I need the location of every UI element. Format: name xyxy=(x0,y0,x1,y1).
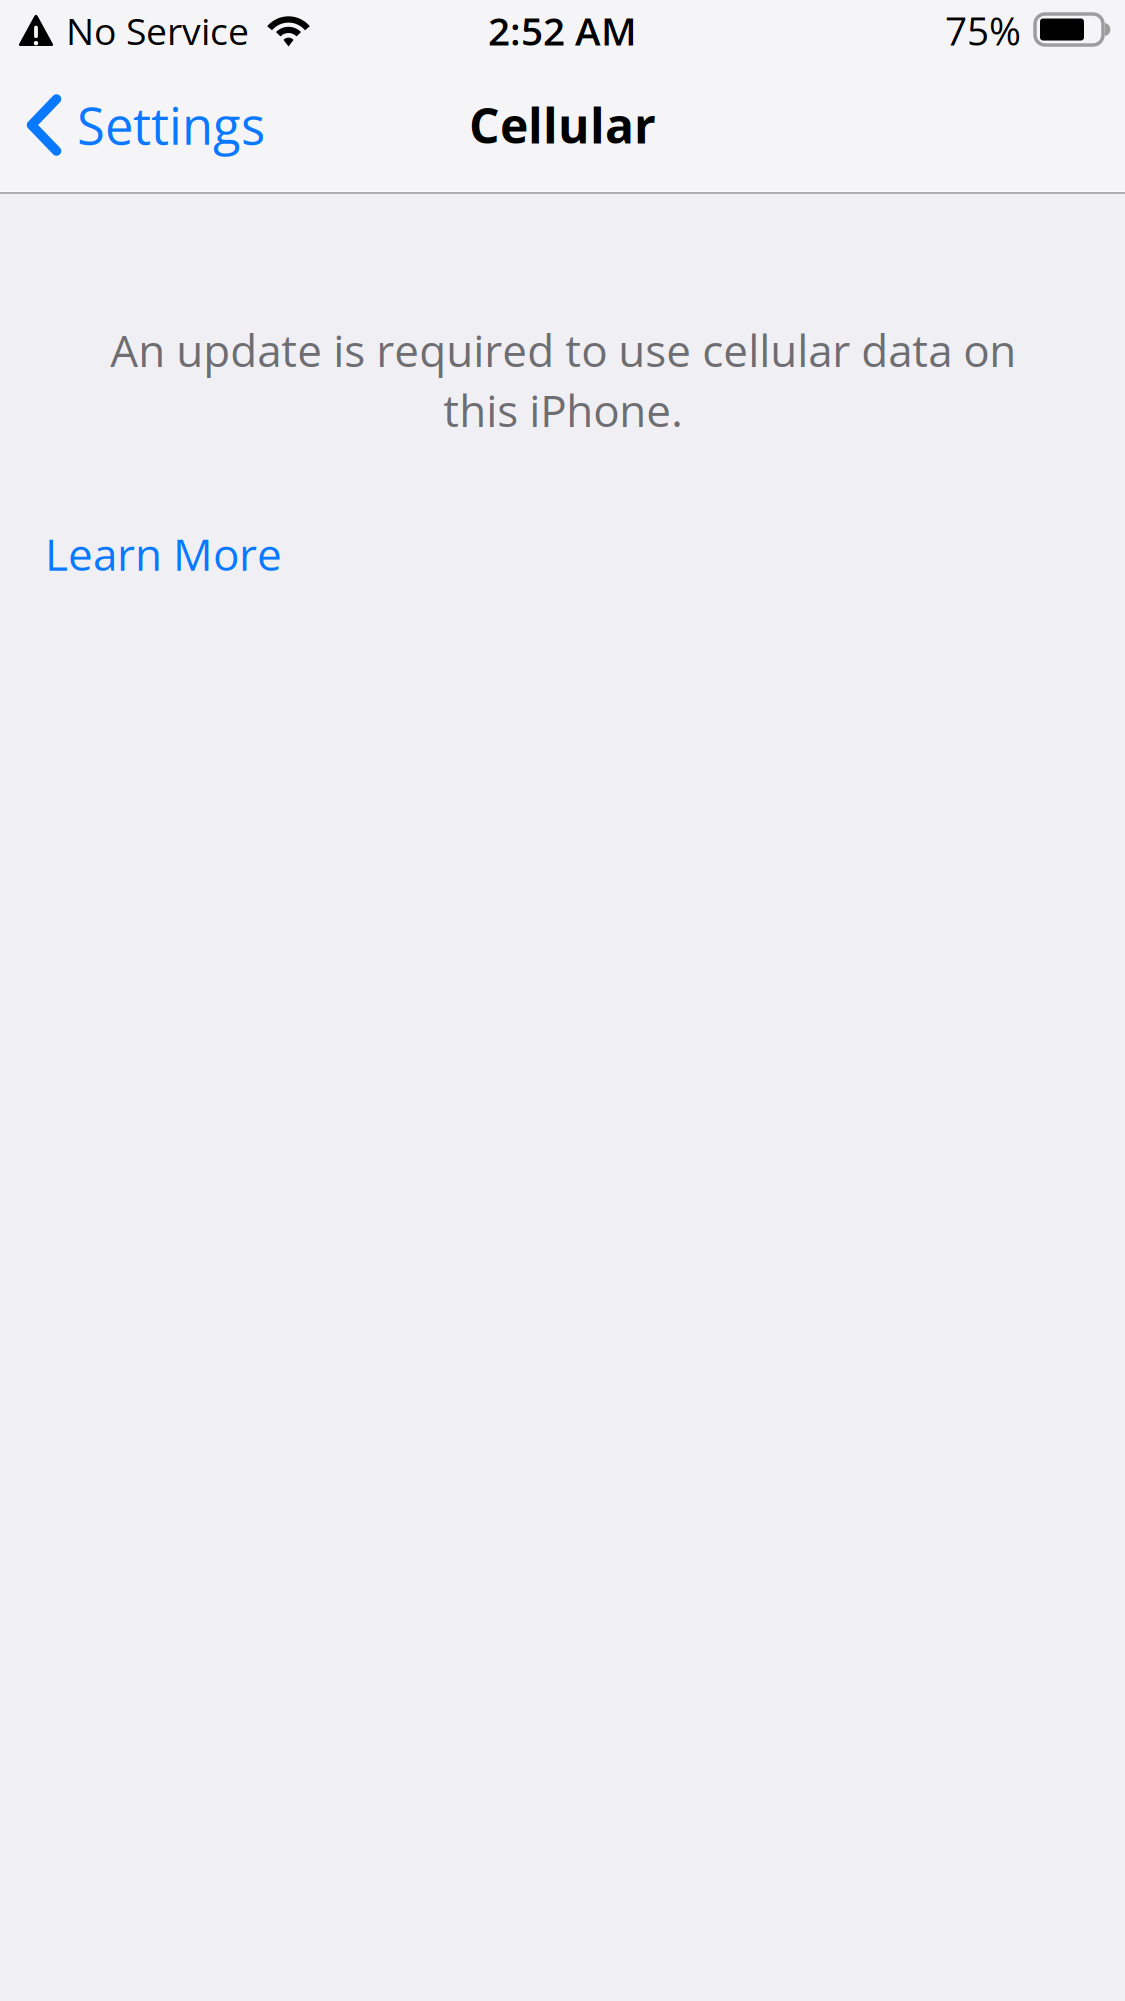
staticText: An update is required to use cellular da… xyxy=(110,320,1016,440)
staticText: Learn More xyxy=(45,524,282,584)
staticText: No Service xyxy=(66,5,249,56)
button[interactable]: Learn More xyxy=(0,440,318,602)
button[interactable]: Settings xyxy=(0,59,281,191)
staticText: Settings xyxy=(77,90,265,159)
staticText: Cellular xyxy=(469,92,656,158)
staticText: 75% xyxy=(945,4,1021,57)
staticText: 2:52 AM xyxy=(488,4,637,57)
